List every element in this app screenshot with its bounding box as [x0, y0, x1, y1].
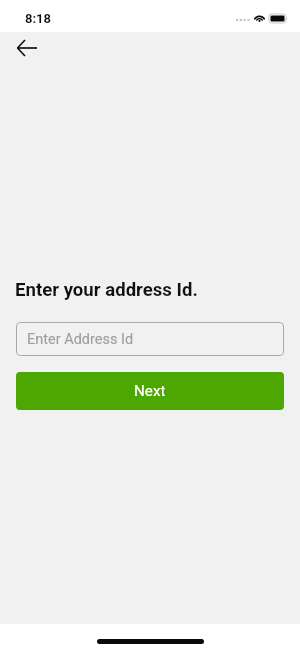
button[interactable]: Next [16, 372, 284, 410]
staticText: Enter your address Id. [15, 279, 198, 301]
staticText: Enter Address Id [27, 331, 134, 348]
button[interactable]: Enter Address Id [16, 322, 284, 356]
staticText: 8:18 [25, 11, 52, 26]
button[interactable]: Back [8, 36, 46, 59]
staticText: Next [134, 382, 166, 400]
